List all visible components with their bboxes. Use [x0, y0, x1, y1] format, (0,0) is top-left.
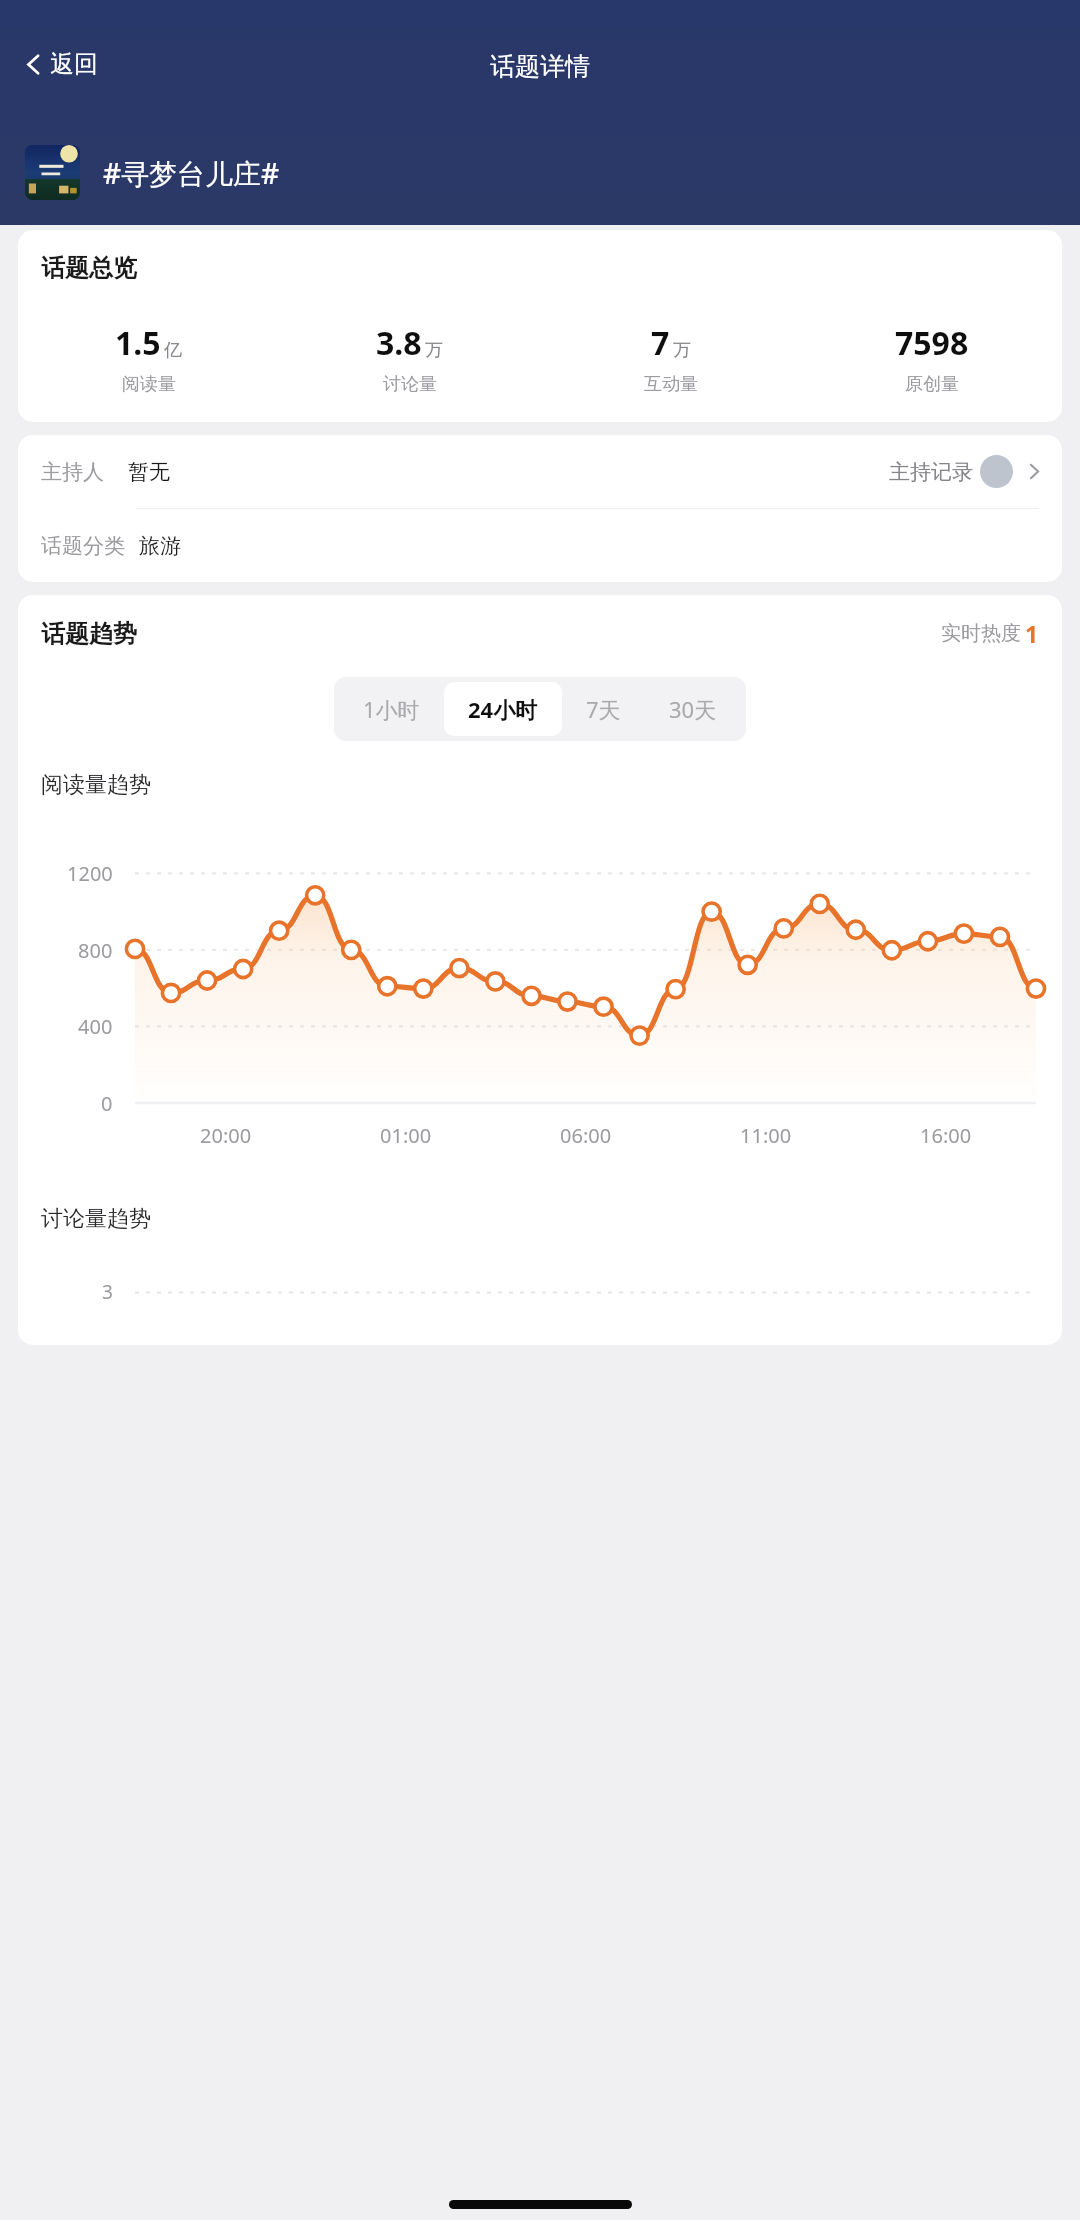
staticText: 1: [1025, 618, 1039, 649]
staticText: 0: [101, 1090, 113, 1116]
button[interactable]: 话题分类: [18, 509, 1062, 582]
staticText: 旅游: [139, 533, 181, 559]
staticText: 话题总览: [41, 253, 137, 283]
staticText: 互动量: [644, 373, 698, 396]
staticText: 阅读量: [122, 373, 176, 396]
staticText: 实时热度: [941, 621, 1021, 646]
staticText: 亿: [164, 339, 182, 362]
staticText: 1小时: [363, 694, 420, 724]
staticText: 01:00: [380, 1122, 432, 1149]
staticText: #寻梦台儿庄#: [103, 154, 280, 192]
staticText: 06:00: [560, 1122, 612, 1149]
staticText: 30天: [669, 694, 717, 724]
staticText: 主持人: [41, 459, 104, 485]
staticText: 24小时: [468, 694, 538, 724]
staticText: 1200: [67, 860, 113, 886]
other: Back: [22, 53, 45, 76]
staticText: 7: [651, 321, 670, 365]
staticText: 1.5: [115, 321, 161, 365]
staticText: 原创量: [905, 373, 959, 396]
button[interactable]: #寻梦台儿庄#: [25, 145, 280, 200]
staticText: 400: [78, 1013, 113, 1039]
staticText: 3: [102, 1279, 113, 1305]
staticText: 万: [673, 339, 691, 362]
staticText: 800: [78, 937, 113, 963]
staticText: 讨论量: [383, 373, 437, 396]
button[interactable]: Back: [16, 40, 104, 88]
staticText: 话题趋势: [41, 619, 137, 649]
staticText: 阅读量趋势: [41, 771, 151, 799]
button[interactable]: 1小时: [339, 682, 444, 736]
staticText: 11:00: [740, 1122, 792, 1149]
staticText: 7天: [586, 694, 621, 724]
staticText: 讨论量趋势: [41, 1205, 151, 1233]
staticText: 返回: [50, 49, 98, 79]
button[interactable]: 1.5: [18, 321, 279, 396]
staticText: 7598: [895, 321, 969, 365]
button[interactable]: 3.8: [279, 321, 540, 396]
staticText: 3.8: [376, 321, 422, 365]
button[interactable]: 24小时: [444, 682, 562, 736]
staticText: 主持记录: [889, 459, 973, 485]
staticText: 16:00: [920, 1122, 972, 1149]
button[interactable]: 7天: [562, 682, 645, 736]
staticText: 话题详情: [490, 51, 590, 82]
button[interactable]: 30天: [645, 682, 741, 736]
button[interactable]: 实时热度: [941, 618, 1039, 649]
staticText: 万: [425, 339, 443, 362]
button[interactable]: 主持人: [18, 435, 1062, 508]
button[interactable]: 7: [540, 321, 801, 396]
button[interactable]: 7598: [801, 321, 1062, 396]
staticText: 话题分类: [41, 533, 125, 559]
staticText: 20:00: [200, 1122, 252, 1149]
staticText: 暂无: [128, 459, 170, 485]
